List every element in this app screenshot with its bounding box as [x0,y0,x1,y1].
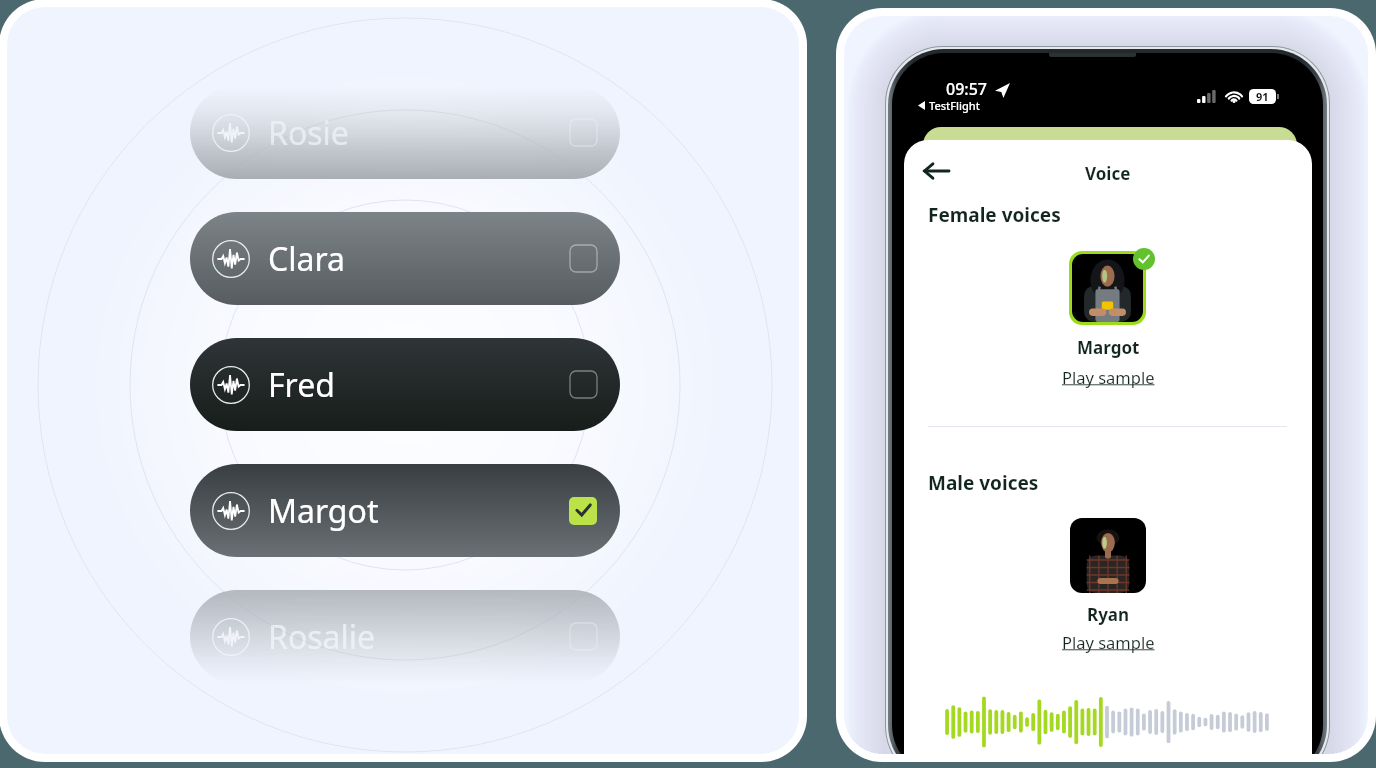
button[interactable]: Fred [190,338,620,431]
button[interactable]: Play sample [1062,366,1155,388]
staticText: Rosalie [268,615,376,659]
staticText: Margot [268,489,379,533]
staticText: Ryan [1087,603,1130,626]
button[interactable]: Margot [190,464,620,557]
staticText: TestFlight [929,98,980,113]
staticText: Female voices [928,202,1061,228]
staticText: Clara [268,237,345,281]
staticText: 09:57 [946,78,987,100]
staticText: Rosie [268,111,349,155]
button[interactable]: Clara [190,212,620,305]
button[interactable]: Back [920,155,952,187]
button[interactable]: Rosalie [190,590,620,683]
button[interactable]: Rosie [190,86,620,179]
staticText: 91 [1256,89,1269,104]
staticText: Margot [1077,336,1140,359]
other: Selected [569,497,597,525]
button[interactable]: Play sample [1062,631,1155,653]
staticText: Fred [268,363,335,407]
staticText: Male voices [928,470,1039,496]
staticText: Voice [1085,162,1131,185]
